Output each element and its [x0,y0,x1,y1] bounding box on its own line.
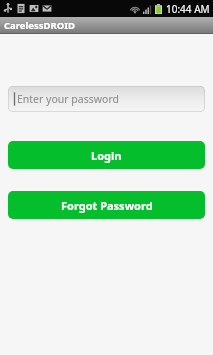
button[interactable]: Login [8,141,205,169]
staticText: 10:44 AM [166,2,210,16]
button[interactable]: Enter your password [8,86,205,112]
button[interactable]: Forgot Password [8,191,205,219]
staticText: Forgot Password [61,198,153,213]
staticText: CarelessDROID [4,19,75,32]
staticText: Enter your password [17,92,119,106]
staticText: Login [91,148,122,163]
